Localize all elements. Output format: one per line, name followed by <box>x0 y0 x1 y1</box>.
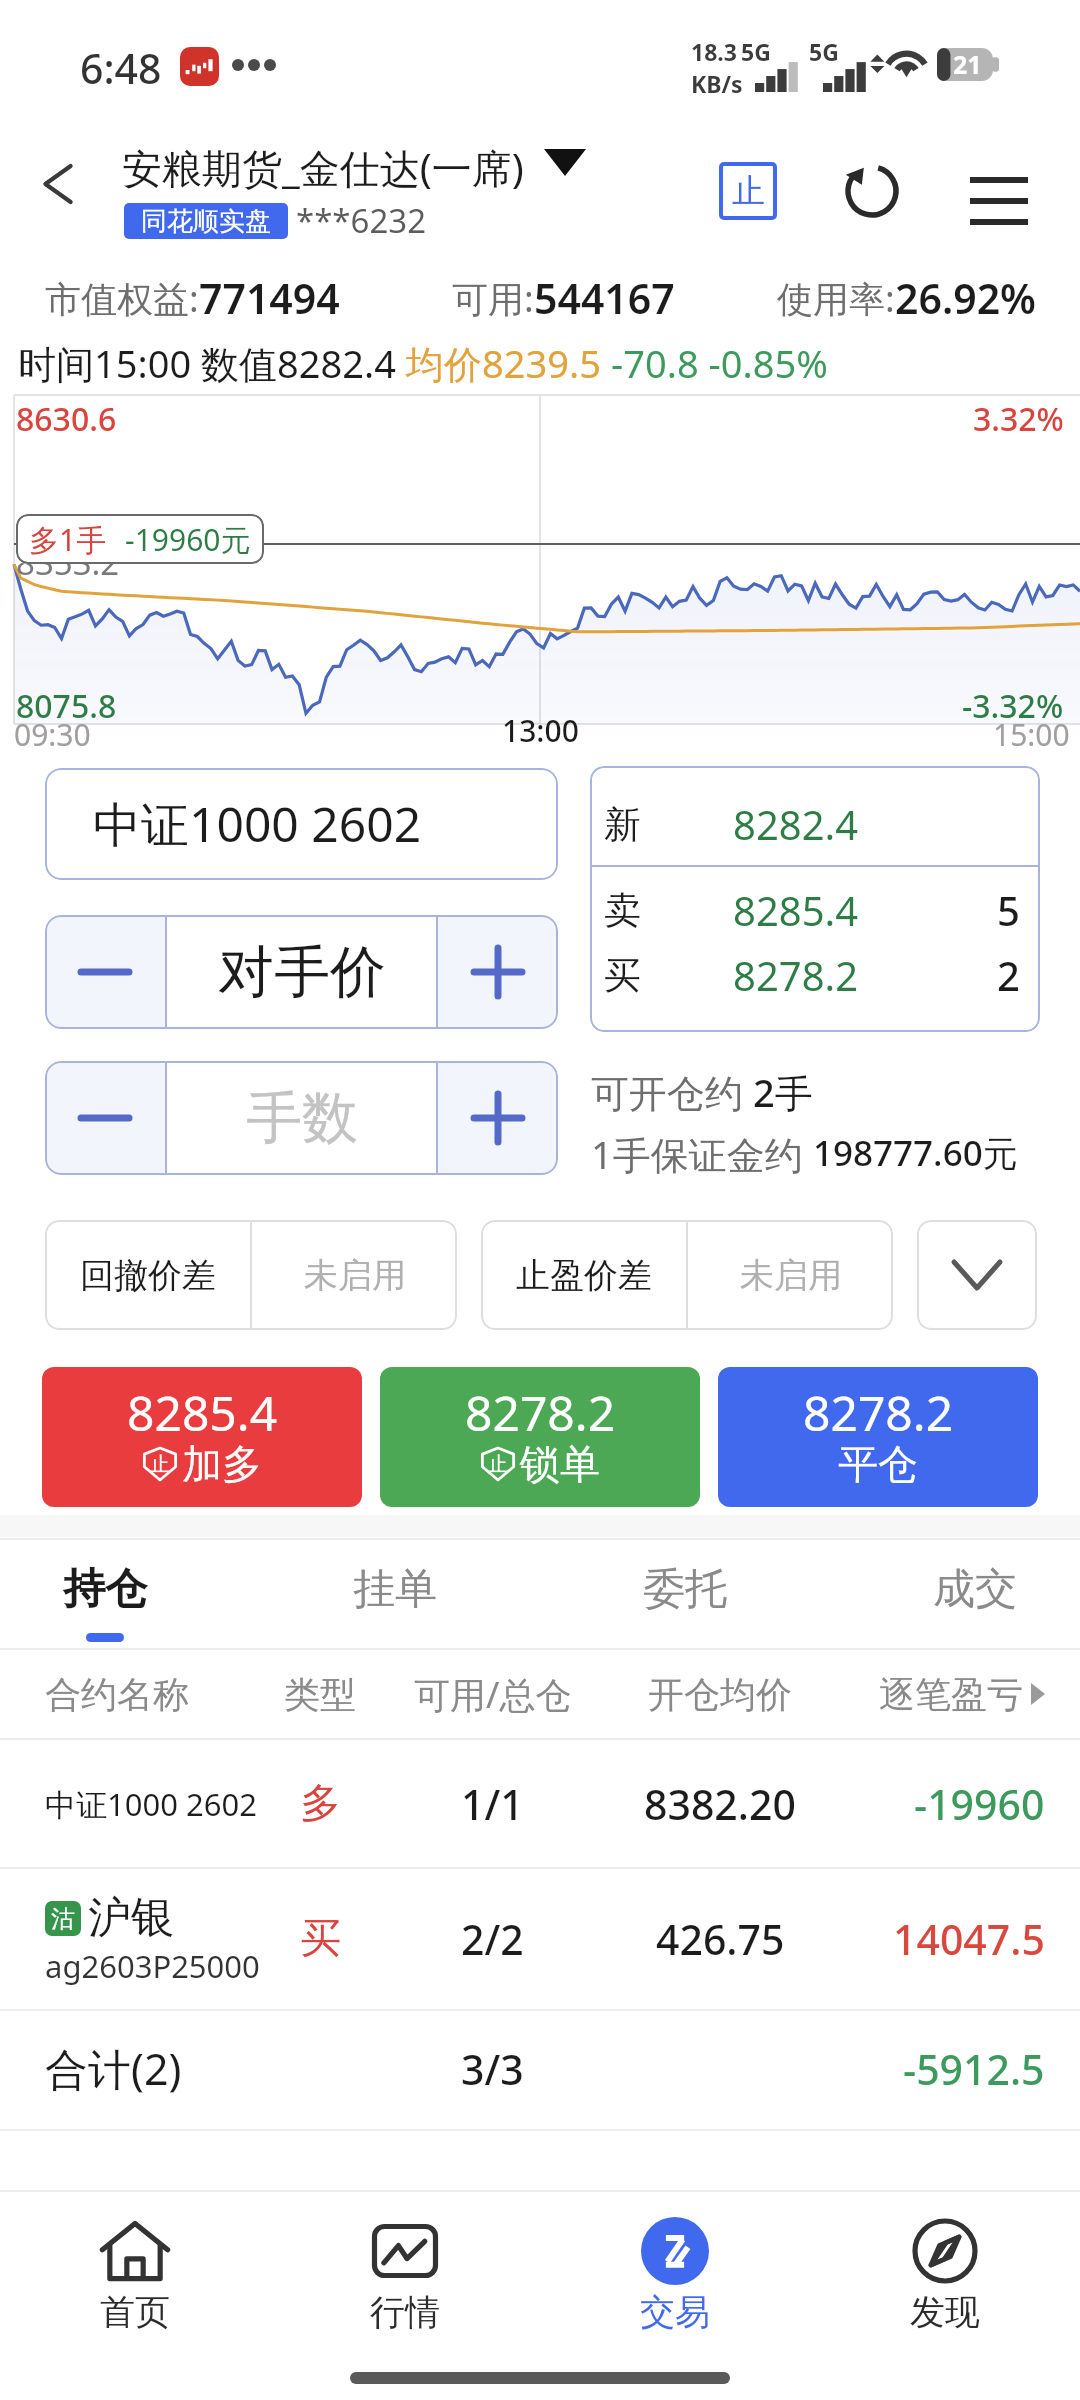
staticText: -19960 <box>914 1776 1045 1832</box>
staticText: 26.92% <box>895 270 1036 326</box>
staticText: 加多 <box>182 1439 262 1489</box>
staticText: 09:30 <box>14 714 91 755</box>
staticText: 合计(2) <box>45 2039 182 2098</box>
staticText: 同花顺实盘 <box>141 205 271 238</box>
staticText: 1手保证金约 <box>591 1128 813 1178</box>
staticText: 5G <box>741 36 771 67</box>
button[interactable]: 成交 <box>885 1540 1065 1648</box>
staticText: 21 <box>953 47 982 81</box>
staticText: ***6232 <box>296 198 427 243</box>
staticText: 15:00 <box>993 714 1070 755</box>
staticText: 对手价 <box>218 937 386 1008</box>
staticText: 使用率: <box>777 274 895 323</box>
staticText: 手数 <box>246 1083 358 1154</box>
staticText: 止 <box>488 1452 508 1477</box>
button[interactable]: 回撤价差 <box>45 1220 457 1330</box>
staticText: 18.3 <box>691 36 737 67</box>
staticText: 锁单 <box>520 1439 600 1489</box>
staticText: 8278.2 <box>803 1380 954 1445</box>
button[interactable]: 委托 <box>595 1540 775 1648</box>
staticText: 6:48 <box>80 40 162 96</box>
staticText: 8282.4 <box>733 797 859 851</box>
staticText: KB/s <box>691 68 743 99</box>
staticText: 成交 <box>933 1563 1017 1616</box>
button[interactable]: Increase <box>438 1061 558 1175</box>
button[interactable]: 中证1000 2602 <box>0 1740 1080 1867</box>
staticText: 771494 <box>199 270 340 326</box>
staticText: 8075.8 <box>16 684 117 728</box>
staticText: 8278.2 <box>465 1380 616 1445</box>
staticText: 行情 <box>370 2290 440 2334</box>
staticText: 1/1 <box>461 1776 524 1832</box>
staticText: 类型 <box>284 1672 356 1717</box>
staticText: 8630.6 <box>16 397 117 441</box>
staticText: 426.75 <box>656 1911 785 1967</box>
button[interactable]: 发现 <box>845 2200 1045 2350</box>
staticText: 持仓 <box>63 1563 147 1616</box>
staticText: 合约名称 <box>45 1672 189 1717</box>
button[interactable]: Menu <box>944 146 1054 256</box>
staticText: 2手 <box>753 1066 813 1116</box>
staticText: 3/3 <box>461 2041 524 2097</box>
staticText: 均价8239.5 <box>406 337 611 389</box>
button[interactable]: 止盈价差 <box>481 1220 893 1330</box>
button[interactable]: 8285.4 <box>42 1367 362 1507</box>
button[interactable]: 手数 <box>167 1061 436 1175</box>
staticText: 可开仓约 <box>591 1066 753 1116</box>
staticText: 2/2 <box>461 1911 524 1967</box>
button[interactable]: Refresh <box>827 146 917 236</box>
button[interactable]: Expand more options <box>917 1220 1037 1330</box>
button[interactable]: Stop loss <box>703 146 793 236</box>
button[interactable]: Decrease <box>45 1061 165 1175</box>
staticText: 首页 <box>100 2290 170 2334</box>
staticText: 新 <box>604 801 641 848</box>
staticText: 委托 <box>643 1563 727 1616</box>
staticText: 13:00 <box>502 710 579 751</box>
button[interactable]: 首页 <box>35 2200 235 2350</box>
staticText: 可用/总仓 <box>414 1670 572 1719</box>
button[interactable]: Back <box>20 146 96 222</box>
button[interactable]: 8278.2 <box>380 1367 700 1507</box>
staticText: 交易 <box>640 2290 710 2334</box>
staticText: 8278.2 <box>733 948 859 1002</box>
staticText: 市值权益: <box>45 274 199 323</box>
staticText: 安粮期货_金仕达(一席) <box>122 140 524 195</box>
staticText: 8382.20 <box>644 1776 796 1832</box>
button[interactable]: Decrease <box>45 915 165 1029</box>
staticText: 回撤价差 <box>80 1254 216 1297</box>
staticText: 止 <box>150 1452 170 1477</box>
button[interactable]: 对手价 <box>167 915 436 1029</box>
staticText: 沪银 <box>88 1891 174 1945</box>
button[interactable]: 交易 <box>575 2200 775 2350</box>
staticText: 2 <box>997 948 1020 1002</box>
button[interactable]: Increase <box>438 915 558 1029</box>
staticText: 买 <box>604 952 641 999</box>
button[interactable]: 持仓 <box>15 1540 195 1648</box>
staticText: 中证1000 2602 <box>45 1783 257 1825</box>
staticText: -5912.5 <box>903 2041 1045 2097</box>
staticText: 5G <box>809 36 839 67</box>
button[interactable]: 挂单 <box>305 1540 485 1648</box>
staticText: 可用: <box>452 274 534 323</box>
staticText: 未启用 <box>304 1254 406 1297</box>
staticText: 198777.60元 <box>813 1129 1018 1177</box>
staticText: 未启用 <box>740 1254 842 1297</box>
staticText: 8285.4 <box>127 1380 278 1445</box>
button[interactable]: 中证1000 2602 <box>45 768 558 880</box>
staticText: -19960元 <box>125 519 251 560</box>
staticText: 开仓均价 <box>648 1672 792 1717</box>
staticText: 买 <box>300 1913 341 1965</box>
staticText: 沽 <box>51 1904 75 1934</box>
staticText: 中证1000 2602 <box>93 791 422 857</box>
staticText: 5 <box>997 883 1020 937</box>
staticText: 时间15:00 数值8282.4 <box>18 337 406 389</box>
button[interactable]: 沽 <box>0 1869 1080 2009</box>
staticText: -70.8 -0.85% <box>611 337 828 389</box>
button[interactable]: 8278.2 <box>718 1367 1038 1507</box>
staticText: 止盈价差 <box>516 1254 652 1297</box>
staticText: 发现 <box>910 2290 980 2334</box>
staticText: ag2603P25000 <box>45 1945 260 1987</box>
staticText: 逐笔盈亏 <box>879 1672 1023 1717</box>
button[interactable]: 行情 <box>305 2200 505 2350</box>
staticText: 卖 <box>604 887 641 934</box>
